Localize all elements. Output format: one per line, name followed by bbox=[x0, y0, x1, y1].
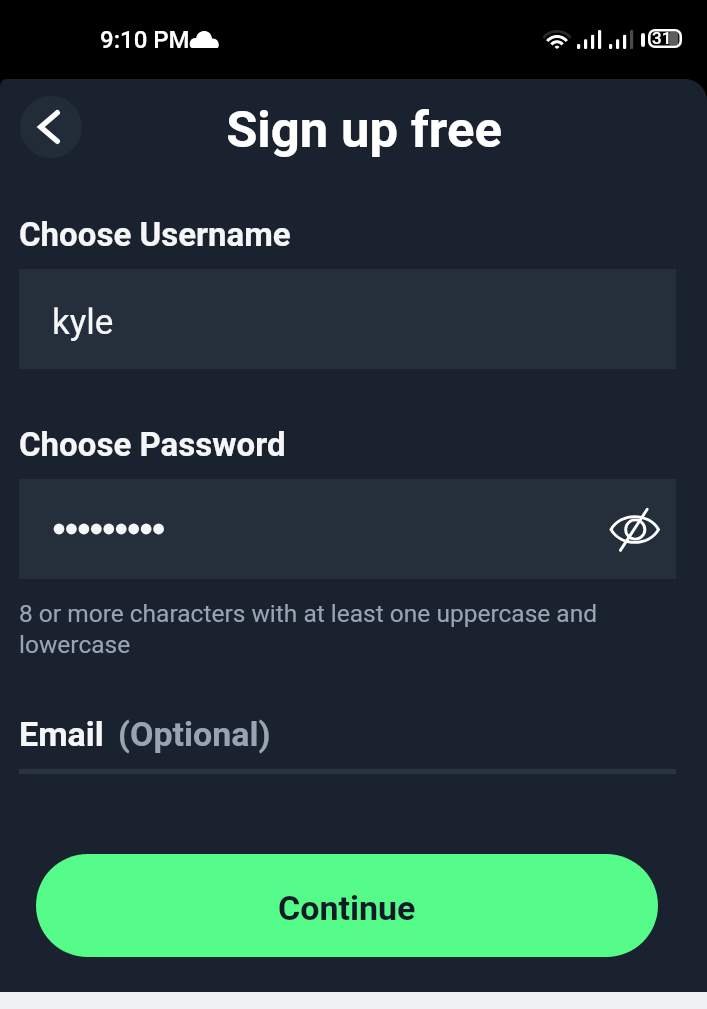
staticText: Continue bbox=[278, 888, 416, 928]
staticText: Sign up free bbox=[226, 100, 502, 160]
staticText: 9:10 PM bbox=[100, 26, 190, 54]
staticText: 31 bbox=[652, 28, 672, 47]
button[interactable]: Show password bbox=[605, 497, 669, 561]
staticText: Email bbox=[19, 714, 104, 754]
button[interactable]: kyle bbox=[19, 269, 676, 369]
staticText: kyle bbox=[52, 302, 114, 343]
staticText: Choose Username bbox=[19, 215, 291, 254]
staticText: Choose Password bbox=[19, 425, 286, 464]
staticText: (Optional) bbox=[118, 714, 271, 754]
button[interactable]: Back bbox=[20, 96, 82, 158]
button[interactable]: Show password bbox=[19, 479, 676, 579]
button[interactable]: Continue bbox=[36, 854, 658, 957]
button[interactable]: Email bbox=[19, 706, 676, 774]
staticText: 8 or more characters with at least one u… bbox=[19, 599, 619, 659]
